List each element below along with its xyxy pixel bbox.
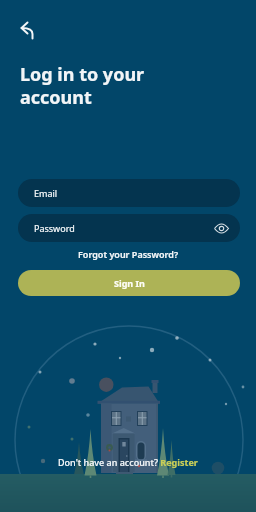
button[interactable] <box>10 16 38 44</box>
button[interactable]: Forgot your Password? <box>78 248 179 260</box>
staticText: Sign In <box>114 277 145 289</box>
button[interactable]: Email <box>18 179 240 207</box>
button[interactable]: Sign In <box>18 270 240 296</box>
staticText: Log in to your account <box>20 62 145 109</box>
button[interactable]: Don't have an account? Register <box>58 456 198 468</box>
staticText: Password <box>34 222 75 234</box>
staticText: Email <box>34 187 58 199</box>
button[interactable]: Password <box>18 214 240 242</box>
